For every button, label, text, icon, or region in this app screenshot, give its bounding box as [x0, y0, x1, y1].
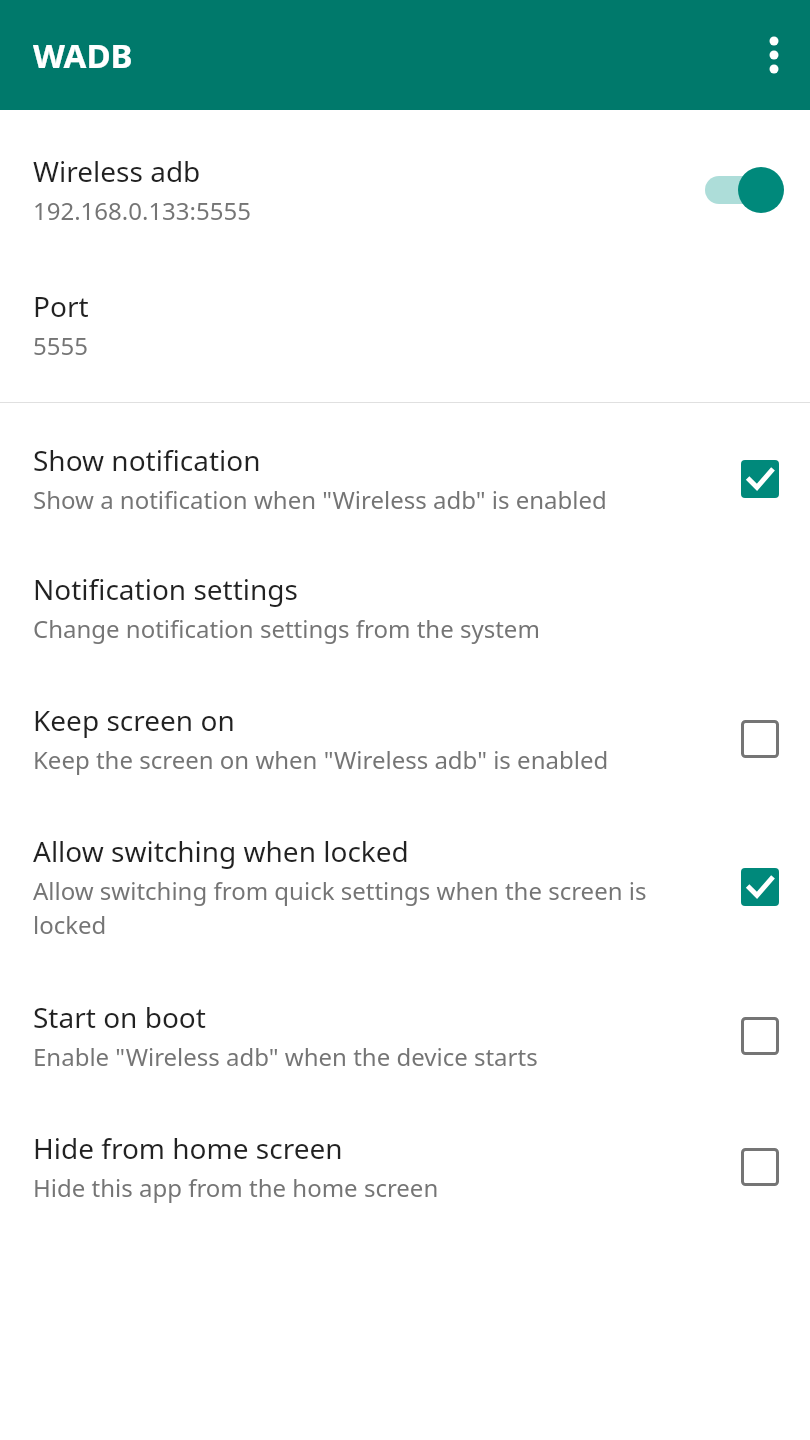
staticText: Wireless adb: [33, 152, 201, 190]
button[interactable]: Show notification: [724, 443, 796, 515]
button[interactable]: Keep screen on: [724, 703, 796, 775]
staticText: Show a notification when "Wireless adb" …: [33, 483, 607, 516]
staticText: Enable "Wireless adb" when the device st…: [33, 1040, 538, 1073]
staticText: WADB: [33, 33, 133, 78]
staticText: Allow switching when locked: [33, 832, 409, 870]
staticText: Show notification: [33, 441, 261, 479]
staticText: Keep screen on: [33, 701, 235, 739]
staticText: 192.168.0.133:5555: [33, 194, 251, 227]
button[interactable]: Port: [0, 253, 810, 394]
staticText: Port: [33, 287, 89, 325]
button[interactable]: Wireless adb: [0, 110, 810, 253]
button[interactable]: Toggle wireless adb: [686, 154, 796, 226]
button[interactable]: Start on boot: [724, 1000, 796, 1072]
staticText: Hide this app from the home screen: [33, 1171, 439, 1204]
button[interactable]: Start on boot: [0, 960, 810, 1091]
button[interactable]: Hide from home screen: [0, 1091, 810, 1222]
staticText: Keep the screen on when "Wireless adb" i…: [33, 743, 609, 776]
button[interactable]: Keep screen on: [0, 663, 810, 794]
button[interactable]: Allow switching when locked: [0, 794, 810, 960]
button[interactable]: Notification settings: [0, 534, 810, 663]
staticText: Allow switching from quick settings when…: [33, 874, 708, 942]
staticText: Notification settings: [33, 570, 298, 608]
staticText: Start on boot: [33, 998, 206, 1036]
button[interactable]: More options: [738, 19, 810, 91]
button[interactable]: Show notification: [0, 403, 810, 534]
staticText: Change notification settings from the sy…: [33, 612, 540, 645]
staticText: 5555: [33, 329, 88, 362]
button[interactable]: Allow switching when locked: [724, 851, 796, 923]
staticText: Hide from home screen: [33, 1129, 343, 1167]
button[interactable]: Hide from home screen: [724, 1131, 796, 1203]
